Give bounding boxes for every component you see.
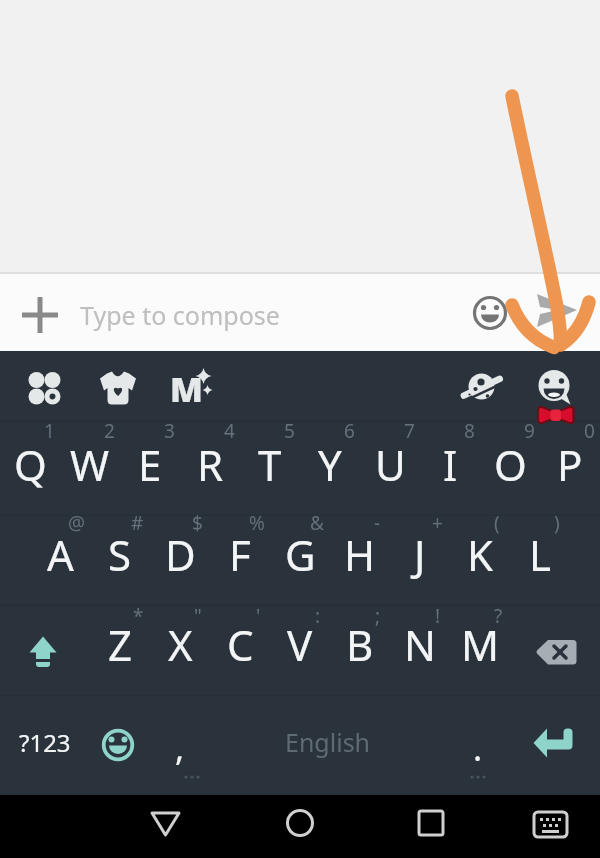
button[interactable] xyxy=(274,800,326,852)
button[interactable]: H xyxy=(315,524,405,584)
staticText: S xyxy=(108,526,132,583)
staticText: A xyxy=(47,526,74,583)
button[interactable]: X xyxy=(135,614,225,674)
staticText: $ xyxy=(192,510,203,536)
staticText: ' xyxy=(256,603,261,629)
staticText: M xyxy=(461,616,500,673)
staticText: C xyxy=(227,616,254,673)
staticText: J xyxy=(414,526,426,583)
staticText: English xyxy=(285,725,371,759)
button[interactable]: F xyxy=(195,524,285,584)
staticText: : xyxy=(315,603,321,629)
button[interactable]: D xyxy=(135,524,225,584)
staticText: 9 xyxy=(524,418,535,444)
button[interactable]: V xyxy=(255,614,345,674)
staticText: 2 xyxy=(104,418,115,444)
button[interactable]: English xyxy=(283,712,373,772)
button[interactable] xyxy=(24,368,66,410)
button[interactable] xyxy=(406,800,458,852)
staticText: ! xyxy=(435,603,441,629)
staticText: @ xyxy=(68,510,86,536)
staticText: 8 xyxy=(464,418,475,444)
staticText: D xyxy=(165,526,196,583)
staticText: 4 xyxy=(224,418,235,444)
button[interactable]: B xyxy=(315,614,405,674)
staticText: X xyxy=(168,616,193,673)
staticText: 1 xyxy=(44,418,55,444)
staticText: & xyxy=(310,510,324,536)
button[interactable]: Q xyxy=(0,434,75,494)
button[interactable] xyxy=(460,368,502,410)
staticText: Q xyxy=(14,436,47,493)
staticText: 0 xyxy=(584,418,595,444)
staticText: Z xyxy=(108,616,133,673)
button[interactable]: K xyxy=(435,524,525,584)
button[interactable]: . xyxy=(433,718,523,778)
button[interactable]: A xyxy=(15,524,105,584)
button[interactable] xyxy=(97,368,139,410)
staticText: ; xyxy=(375,603,381,629)
staticText: W xyxy=(70,436,110,493)
button[interactable]: C xyxy=(195,614,285,674)
button[interactable]: I xyxy=(405,434,495,494)
button[interactable]: , xyxy=(135,718,225,778)
staticText: 3 xyxy=(164,418,175,444)
button[interactable] xyxy=(0,274,600,351)
staticText: H xyxy=(344,526,376,583)
button[interactable] xyxy=(12,620,74,682)
staticText: I xyxy=(443,436,458,493)
staticText: M xyxy=(170,366,203,412)
button[interactable]: M xyxy=(435,614,525,674)
staticText: # xyxy=(131,510,144,536)
button[interactable] xyxy=(520,715,580,775)
button[interactable]: Y xyxy=(285,434,375,494)
staticText: Type to compose xyxy=(80,298,280,332)
staticText: U xyxy=(375,436,406,493)
staticText: , xyxy=(175,725,185,771)
staticText: T xyxy=(258,436,282,493)
button[interactable]: T xyxy=(225,434,315,494)
staticText: - xyxy=(374,510,381,536)
staticText: N xyxy=(404,616,436,673)
button[interactable]: N xyxy=(375,614,465,674)
button[interactable]: J xyxy=(375,524,465,584)
button[interactable]: E xyxy=(105,434,195,494)
staticText: O xyxy=(494,436,527,493)
staticText: R xyxy=(197,436,224,493)
staticText: 7 xyxy=(404,418,415,444)
staticText: . xyxy=(473,725,483,771)
button[interactable]: ?123 xyxy=(0,712,90,772)
button[interactable]: G xyxy=(255,524,345,584)
staticText: ? xyxy=(494,603,503,629)
button[interactable]: W xyxy=(45,434,135,494)
staticText: * xyxy=(133,603,144,629)
button[interactable]: U xyxy=(345,434,435,494)
staticText: 6 xyxy=(344,418,355,444)
staticText: V xyxy=(287,616,313,673)
button[interactable] xyxy=(524,620,586,682)
button[interactable] xyxy=(88,715,148,775)
button[interactable]: Z xyxy=(75,614,165,674)
staticText: P xyxy=(557,436,583,493)
staticText: " xyxy=(194,603,202,629)
button[interactable]: R xyxy=(165,434,255,494)
button[interactable]: S xyxy=(75,524,165,584)
button[interactable]: Type to compose xyxy=(80,295,340,335)
button[interactable]: P xyxy=(525,434,600,494)
button[interactable]: L xyxy=(495,524,585,584)
staticText: % xyxy=(249,510,265,536)
button[interactable] xyxy=(140,800,192,852)
staticText: G xyxy=(285,526,316,583)
staticText: E xyxy=(138,436,162,493)
button[interactable] xyxy=(526,800,578,852)
staticText: F xyxy=(229,526,251,583)
staticText: 5 xyxy=(284,418,295,444)
staticText: B xyxy=(346,616,374,673)
button[interactable]: M xyxy=(141,359,231,419)
button[interactable] xyxy=(532,368,574,410)
button[interactable]: O xyxy=(465,434,555,494)
staticText: ) xyxy=(554,510,560,536)
staticText: K xyxy=(467,526,493,583)
staticText: + xyxy=(432,510,443,536)
staticText: ?123 xyxy=(19,726,71,759)
